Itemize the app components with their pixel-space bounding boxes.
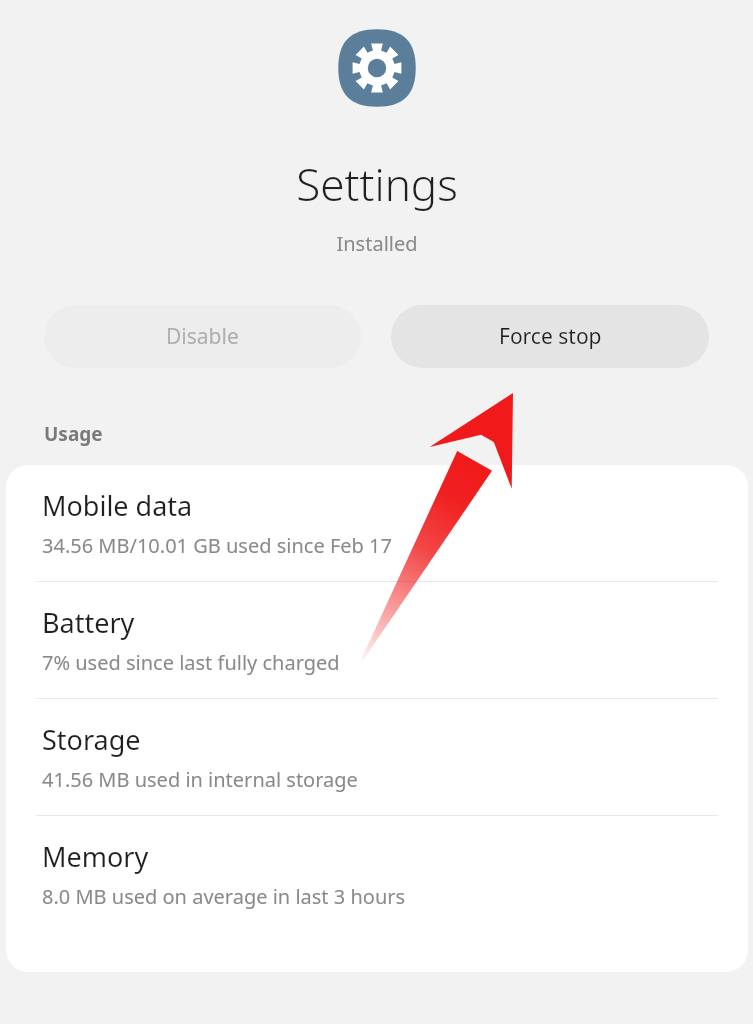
staticText: Force stop xyxy=(499,322,602,351)
staticText: Battery xyxy=(42,604,135,641)
staticText: 34.56 MB/10.01 GB used since Feb 17 xyxy=(42,532,392,559)
staticText: Installed xyxy=(336,230,418,257)
button[interactable]: Storage xyxy=(6,699,748,815)
button[interactable]: Disable xyxy=(44,305,361,368)
other: Settings app icon xyxy=(333,24,421,112)
staticText: Disable xyxy=(166,322,239,351)
staticText: Storage xyxy=(42,721,141,758)
button[interactable]: Battery xyxy=(6,582,748,698)
staticText: Settings xyxy=(296,154,458,214)
staticText: 8.0 MB used on average in last 3 hours xyxy=(42,883,406,910)
button[interactable]: Memory xyxy=(6,816,748,932)
staticText: Usage xyxy=(44,421,103,447)
staticText: 7% used since last fully charged xyxy=(42,649,340,676)
button[interactable]: Mobile data xyxy=(6,465,748,581)
button[interactable]: Force stop xyxy=(391,305,709,368)
staticText: Mobile data xyxy=(42,487,193,524)
staticText: 41.56 MB used in internal storage xyxy=(42,766,358,793)
staticText: Memory xyxy=(42,838,149,875)
